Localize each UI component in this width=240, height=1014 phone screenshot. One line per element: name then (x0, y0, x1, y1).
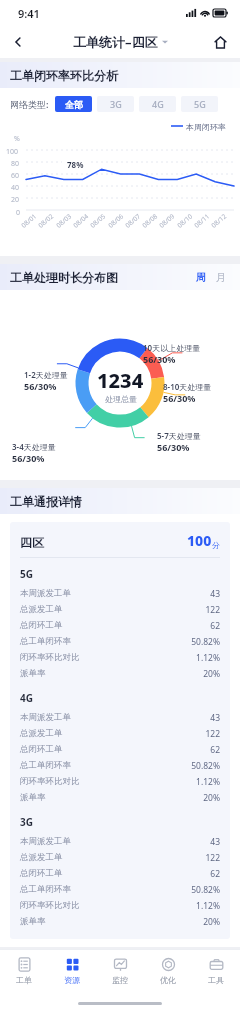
staticText: 0 (16, 208, 21, 218)
staticText: 总工单闭环率 (20, 636, 71, 647)
staticText: 3G (110, 98, 122, 110)
button[interactable]: 4G (139, 96, 176, 112)
button[interactable]: 工具 (192, 950, 240, 992)
staticText: 20% (203, 916, 220, 928)
button[interactable]: 资源 (48, 950, 96, 992)
button[interactable]: 工单统计–四区 (73, 33, 168, 51)
staticText: 5G (20, 567, 33, 581)
staticText: 总派发工单 (20, 852, 63, 863)
staticText: 50.82% (191, 760, 220, 772)
staticText: 08/04 (71, 211, 91, 230)
staticText: 122 (205, 604, 220, 616)
staticText: 43 (210, 712, 220, 724)
staticText: 优化 (160, 975, 176, 985)
staticText: 20 (11, 195, 20, 205)
button[interactable]: Home (206, 28, 234, 56)
staticText: 处理总量 (105, 394, 137, 404)
staticText: 78% (67, 159, 84, 170)
staticText: 4G (20, 691, 33, 705)
staticText: 分 (212, 540, 220, 550)
staticText: 1.12% (196, 900, 220, 912)
staticText: 闭环率环比对比 (20, 900, 80, 911)
staticText: 1234 (97, 367, 144, 394)
staticText: 月 (216, 271, 226, 284)
staticText: 总派发工单 (20, 604, 63, 615)
staticText: 工具 (208, 975, 224, 985)
button[interactable]: 优化 (144, 950, 192, 992)
staticText: 100 (6, 147, 19, 157)
staticText: 4G (152, 98, 164, 110)
button[interactable]: 全部 (55, 96, 92, 112)
staticText: 网络类型: (10, 98, 49, 110)
staticText: 8-10天处理量 (163, 381, 212, 392)
staticText: 工单通报详情 (10, 494, 82, 509)
staticText: 56/30% (143, 353, 176, 365)
staticText: 56/30% (24, 380, 57, 392)
staticText: 08/11 (192, 211, 212, 230)
staticText: 08/12 (209, 211, 229, 230)
staticText: 40 (11, 183, 20, 193)
staticText: 全部 (65, 99, 83, 110)
staticText: 08/02 (36, 211, 56, 230)
staticText: 总闭环工单 (20, 620, 63, 631)
staticText: 1.12% (196, 652, 220, 664)
staticText: 08/03 (54, 211, 74, 230)
staticText: 62 (210, 620, 220, 632)
button[interactable]: 监控 (96, 950, 144, 992)
staticText: 闭环率环比对比 (20, 776, 80, 787)
staticText: 监控 (112, 975, 128, 985)
staticText: 50.82% (191, 884, 220, 896)
staticText: 122 (205, 852, 220, 864)
staticText: 20% (203, 668, 220, 680)
button[interactable]: 3G (97, 96, 134, 112)
staticText: 1-2天处理量 (24, 369, 68, 380)
staticText: 100 (187, 531, 212, 550)
staticText: 总派发工单 (20, 728, 63, 739)
staticText: 四区 (20, 535, 44, 550)
staticText: 资源 (64, 975, 80, 985)
staticText: 总工单闭环率 (20, 884, 71, 895)
button[interactable]: 5G (181, 96, 218, 112)
staticText: 周 (196, 271, 206, 284)
staticText: 5G (194, 98, 206, 110)
staticText: 08/01 (19, 211, 39, 230)
staticText: 工单统计–四区 (73, 33, 158, 51)
staticText: 56/30% (157, 441, 190, 453)
staticText: 56/30% (163, 392, 196, 404)
staticText: 10天以上处理量 (143, 342, 201, 353)
staticText: 80 (11, 159, 20, 169)
staticText: 20% (203, 792, 220, 804)
staticText: 工单闭环率环比分析 (10, 68, 118, 83)
staticText: 9:41 (18, 6, 40, 21)
staticText: 08/10 (175, 211, 195, 230)
staticText: 总闭环工单 (20, 744, 63, 755)
staticText: 122 (205, 728, 220, 740)
staticText: 08/09 (157, 211, 177, 230)
staticText: 派单率 (20, 792, 46, 803)
staticText: 本周闭环率 (186, 122, 226, 132)
staticText: 56/30% (12, 452, 45, 464)
staticText: 08/05 (88, 211, 108, 230)
staticText: 5-7天处理量 (157, 430, 201, 441)
staticText: % (14, 134, 20, 144)
staticText: 1.12% (196, 776, 220, 788)
staticText: 08/08 (140, 211, 160, 230)
staticText: 62 (210, 868, 220, 880)
staticText: 闭环率环比对比 (20, 652, 80, 663)
staticText: 60 (11, 171, 20, 181)
staticText: 总闭环工单 (20, 868, 63, 879)
staticText: 派单率 (20, 916, 46, 927)
button[interactable]: 月 (212, 271, 230, 284)
staticText: 工单处理时长分布图 (10, 270, 118, 285)
staticText: 50.82% (191, 636, 220, 648)
staticText: 工单 (16, 975, 32, 985)
staticText: 08/06 (106, 211, 126, 230)
staticText: 派单率 (20, 668, 46, 679)
staticText: 本周派发工单 (20, 588, 71, 599)
button[interactable]: 工单 (0, 950, 48, 992)
staticText: 62 (210, 744, 220, 756)
staticText: 总工单闭环率 (20, 760, 71, 771)
staticText: 3G (20, 815, 33, 829)
button[interactable]: 周 (190, 271, 212, 284)
button[interactable]: Back (4, 28, 32, 56)
